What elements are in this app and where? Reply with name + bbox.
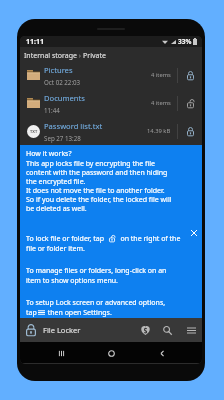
staticText: Oct 02 22:03	[44, 78, 81, 86]
staticText: Internal storage	[24, 51, 77, 61]
button[interactable]: Close	[189, 228, 199, 238]
button[interactable]: Security	[137, 322, 153, 338]
button[interactable]: Unlock item	[182, 123, 198, 139]
button[interactable]: Search	[159, 322, 175, 338]
staticText: Documents	[44, 93, 85, 103]
button[interactable]: Menu	[183, 322, 199, 338]
staticText: 14.39 kB	[147, 127, 171, 135]
staticText: 11:11	[26, 37, 44, 47]
button[interactable]: Unlock item	[182, 67, 198, 83]
button[interactable]: Pictures	[20, 61, 202, 89]
button[interactable]: TXT	[20, 117, 202, 145]
staticText: 33%	[178, 37, 192, 46]
staticText: To setup Lock screen or advanced options…	[26, 298, 166, 317]
staticText: 4 items	[151, 99, 171, 107]
staticText: 11:44	[44, 106, 60, 114]
staticText: To lock file or folder, tap on the right…	[26, 234, 181, 253]
button[interactable]: Documents	[20, 89, 202, 117]
staticText: TXT	[30, 129, 38, 134]
staticText: Private	[83, 51, 106, 61]
staticText: Password list.txt	[44, 121, 103, 131]
staticText: Sep 27 13:28	[44, 134, 81, 142]
button[interactable]: Lock item	[182, 95, 198, 111]
staticText: ›	[77, 51, 83, 61]
button[interactable]: Home	[101, 343, 121, 363]
staticText: File Locker	[43, 325, 81, 335]
staticText: To manage files or folders, long-click o…	[26, 266, 167, 285]
button[interactable]: File Locker	[26, 324, 81, 336]
button[interactable]: Recent apps	[51, 343, 71, 363]
staticText: How it works? This app locks file by enc…	[26, 149, 172, 213]
staticText: 4 items	[151, 71, 171, 79]
button[interactable]: Back	[152, 343, 172, 363]
staticText: Pictures	[44, 65, 73, 75]
